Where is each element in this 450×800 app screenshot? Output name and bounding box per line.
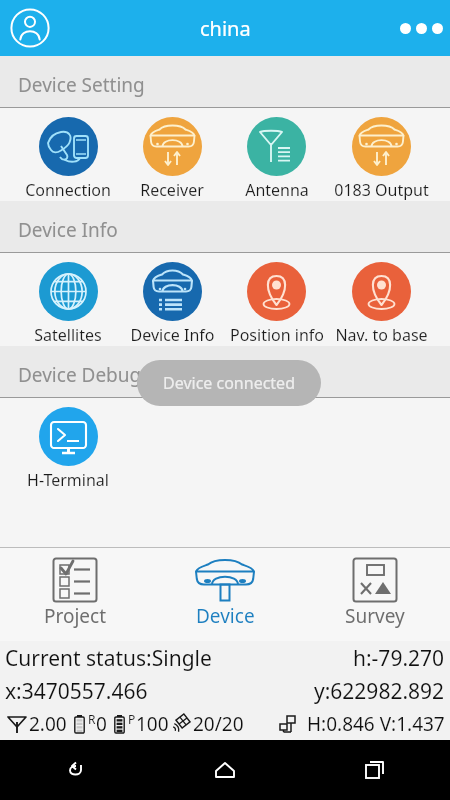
staticText: x:3470557.466 (5, 677, 148, 706)
button[interactable]: Antenna (224, 108, 329, 201)
button[interactable]: More options (393, 2, 449, 54)
button[interactable]: Recents (352, 747, 398, 793)
staticText: R (88, 711, 96, 727)
staticText: 20/20 (193, 711, 244, 737)
staticText: Project (44, 603, 107, 629)
staticText: H:0.846 V:1.437 (307, 711, 445, 737)
staticText: Device Debug (18, 362, 142, 388)
button[interactable]: Project (0, 548, 150, 641)
button[interactable]: Nav. to base (329, 253, 434, 346)
button[interactable]: Survey (300, 548, 450, 641)
button[interactable]: Receiver (120, 108, 224, 201)
button[interactable]: Account (4, 2, 56, 54)
staticText: Receiver (140, 179, 204, 201)
button[interactable]: Position info (224, 253, 329, 346)
staticText: Current status:Single (5, 644, 212, 673)
button[interactable]: H-Terminal (16, 398, 120, 491)
button[interactable]: Home (202, 747, 248, 793)
staticText: Device Info (130, 324, 215, 346)
staticText: Survey (345, 603, 405, 629)
staticText: Device connected (163, 372, 295, 394)
staticText: y:622982.892 (314, 677, 445, 706)
staticText: Connection (25, 179, 111, 201)
button[interactable]: Device (150, 548, 300, 641)
staticText: 0 (96, 711, 107, 737)
staticText: Satellites (34, 324, 102, 346)
staticText: Device (196, 603, 255, 629)
staticText: 0183 Output (334, 179, 429, 201)
staticText: H-Terminal (27, 469, 109, 491)
button[interactable]: Connection (16, 108, 120, 201)
button[interactable]: Satellites (16, 253, 120, 346)
staticText: Position info (230, 324, 324, 346)
staticText: 100 (136, 711, 169, 737)
staticText: china (200, 15, 251, 42)
staticText: Antenna (245, 179, 309, 201)
staticText: Device Setting (18, 72, 145, 98)
staticText: 2.00 (29, 711, 67, 737)
button[interactable]: Back (52, 747, 98, 793)
staticText: Device Info (18, 217, 118, 243)
staticText: h:-79.270 (353, 644, 445, 673)
staticText: P (128, 711, 136, 727)
button[interactable]: 0183 Output (329, 108, 434, 201)
button[interactable]: Device Info (120, 253, 224, 346)
staticText: Nav. to base (335, 324, 428, 346)
